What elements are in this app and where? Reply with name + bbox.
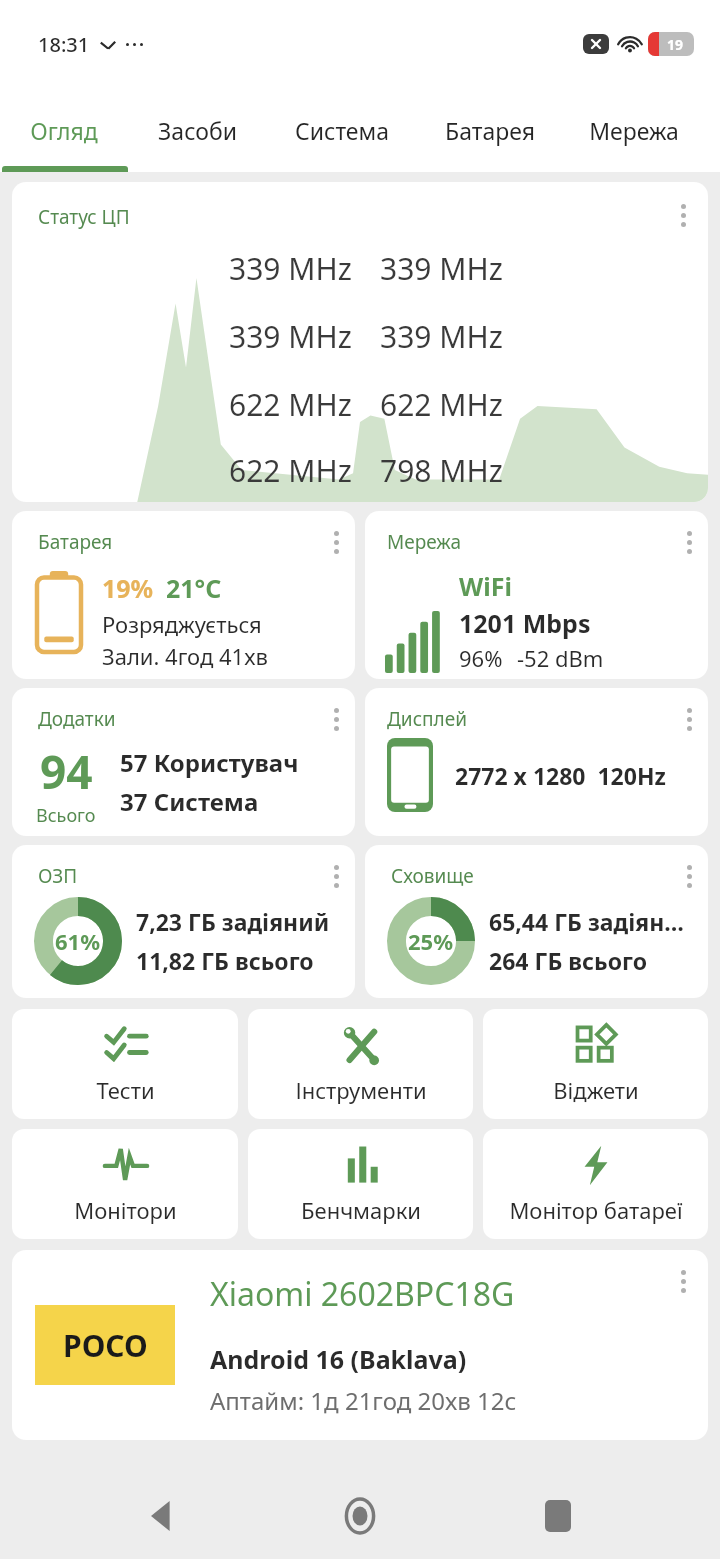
staticText: Xiaomi 2602BPC18G [210, 1272, 515, 1316]
button[interactable]: Дисплей [365, 688, 708, 836]
staticText: Додатки [38, 706, 116, 732]
button[interactable]: Засоби [128, 88, 266, 172]
staticText: Бенчмарки [301, 1195, 421, 1225]
button[interactable]: Огляд [0, 88, 128, 172]
staticText: 339 MHz [380, 248, 503, 289]
staticText: 798 MHz [380, 450, 503, 491]
staticText: Тести [96, 1075, 155, 1105]
button[interactable]: Мережа [365, 511, 708, 679]
staticText: 622 MHz [229, 450, 352, 491]
button[interactable]: More options [326, 698, 347, 741]
button[interactable]: Home [325, 1481, 395, 1551]
staticText: Система [295, 115, 389, 146]
button[interactable]: Статус ЦП [12, 182, 708, 502]
button[interactable]: More options [679, 521, 700, 564]
staticText: Сховище [391, 863, 474, 889]
staticText: Статус ЦП [38, 204, 130, 230]
staticText: -52 dBm [517, 643, 604, 673]
staticText: 264 ГБ всього [489, 945, 647, 976]
button[interactable]: More options [326, 521, 347, 564]
staticText: Розряджується [102, 609, 262, 639]
staticText: 11,82 ГБ всього [136, 945, 314, 976]
staticText: 21°C [166, 571, 222, 605]
button[interactable]: Інструменти [248, 1009, 473, 1119]
button[interactable]: More options [673, 1260, 694, 1303]
staticText: Мережа [589, 115, 679, 146]
button[interactable]: Бенчмарки [248, 1129, 473, 1239]
staticText: Засоби [158, 115, 237, 146]
staticText: 339 MHz [380, 316, 503, 357]
staticText: ОЗП [38, 863, 78, 889]
staticText: 7,23 ГБ задіяний [136, 906, 330, 937]
staticText: 622 MHz [380, 384, 503, 425]
button[interactable]: Монітори [12, 1129, 238, 1239]
staticText: 65,44 ГБ задіян… [489, 906, 684, 937]
button[interactable]: Тести [12, 1009, 238, 1119]
staticText: WiFi [459, 569, 512, 603]
button[interactable]: Сховище [365, 845, 708, 998]
button[interactable]: Батарея [12, 511, 355, 679]
staticText: Монітор батареї [509, 1195, 683, 1225]
staticText: Батарея [38, 529, 113, 555]
staticText: POCO [63, 1325, 148, 1366]
staticText: 339 MHz [229, 316, 352, 357]
staticText: 94 [40, 740, 93, 803]
button[interactable]: Система [266, 88, 418, 172]
button[interactable]: Віджети [483, 1009, 708, 1119]
staticText: Батарея [445, 115, 535, 146]
button[interactable]: More options [326, 855, 347, 898]
button[interactable]: More options [12, 1250, 708, 1440]
staticText: 2772 x 1280 120Hz [455, 760, 666, 791]
staticText: 18:31 [38, 31, 90, 58]
button[interactable]: Back [128, 1481, 198, 1551]
staticText: Android 16 (Baklava) [210, 1342, 467, 1376]
button[interactable]: ОЗП [12, 845, 355, 998]
staticText: 37 Система [120, 785, 259, 818]
button[interactable]: Батарея [418, 88, 561, 172]
staticText: Огляд [30, 115, 98, 146]
staticText: Всього [36, 803, 96, 828]
staticText: Мережа [387, 529, 461, 555]
staticText: Віджети [553, 1075, 639, 1105]
staticText: 622 MHz [229, 384, 352, 425]
staticText: 96% [459, 643, 503, 673]
staticText: Монітори [74, 1195, 177, 1225]
staticText: 25% [408, 926, 454, 956]
staticText: 19% [102, 571, 154, 605]
button[interactable]: Recent apps [523, 1481, 593, 1551]
staticText: 57 Користувач [120, 746, 299, 779]
staticText: Дисплей [387, 706, 467, 732]
staticText: 19 [667, 35, 684, 54]
staticText: 1201 Mbps [459, 606, 591, 640]
button[interactable]: More options [679, 698, 700, 741]
button[interactable]: More options [679, 855, 700, 898]
button[interactable]: Монітор батареї [483, 1129, 708, 1239]
staticText: Зали. 4год 41хв [102, 641, 268, 671]
staticText: 61% [55, 926, 101, 956]
staticText: Інструменти [295, 1075, 427, 1105]
button[interactable]: Мережа [561, 88, 706, 172]
button[interactable]: Додатки [12, 688, 355, 836]
staticText: 339 MHz [229, 248, 352, 289]
button[interactable]: More options [673, 194, 694, 237]
staticText: Аптайм: 1д 21год 20хв 12с [210, 1384, 517, 1417]
